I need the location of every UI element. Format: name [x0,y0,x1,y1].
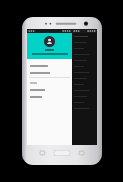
button[interactable]: Close navigation drawer [72,29,97,145]
button[interactable] [27,93,72,100]
button[interactable] [27,86,72,93]
button[interactable] [27,69,72,76]
other: Profile photo [44,36,55,47]
button[interactable]: Profile photo [27,33,72,59]
button[interactable] [27,62,72,69]
